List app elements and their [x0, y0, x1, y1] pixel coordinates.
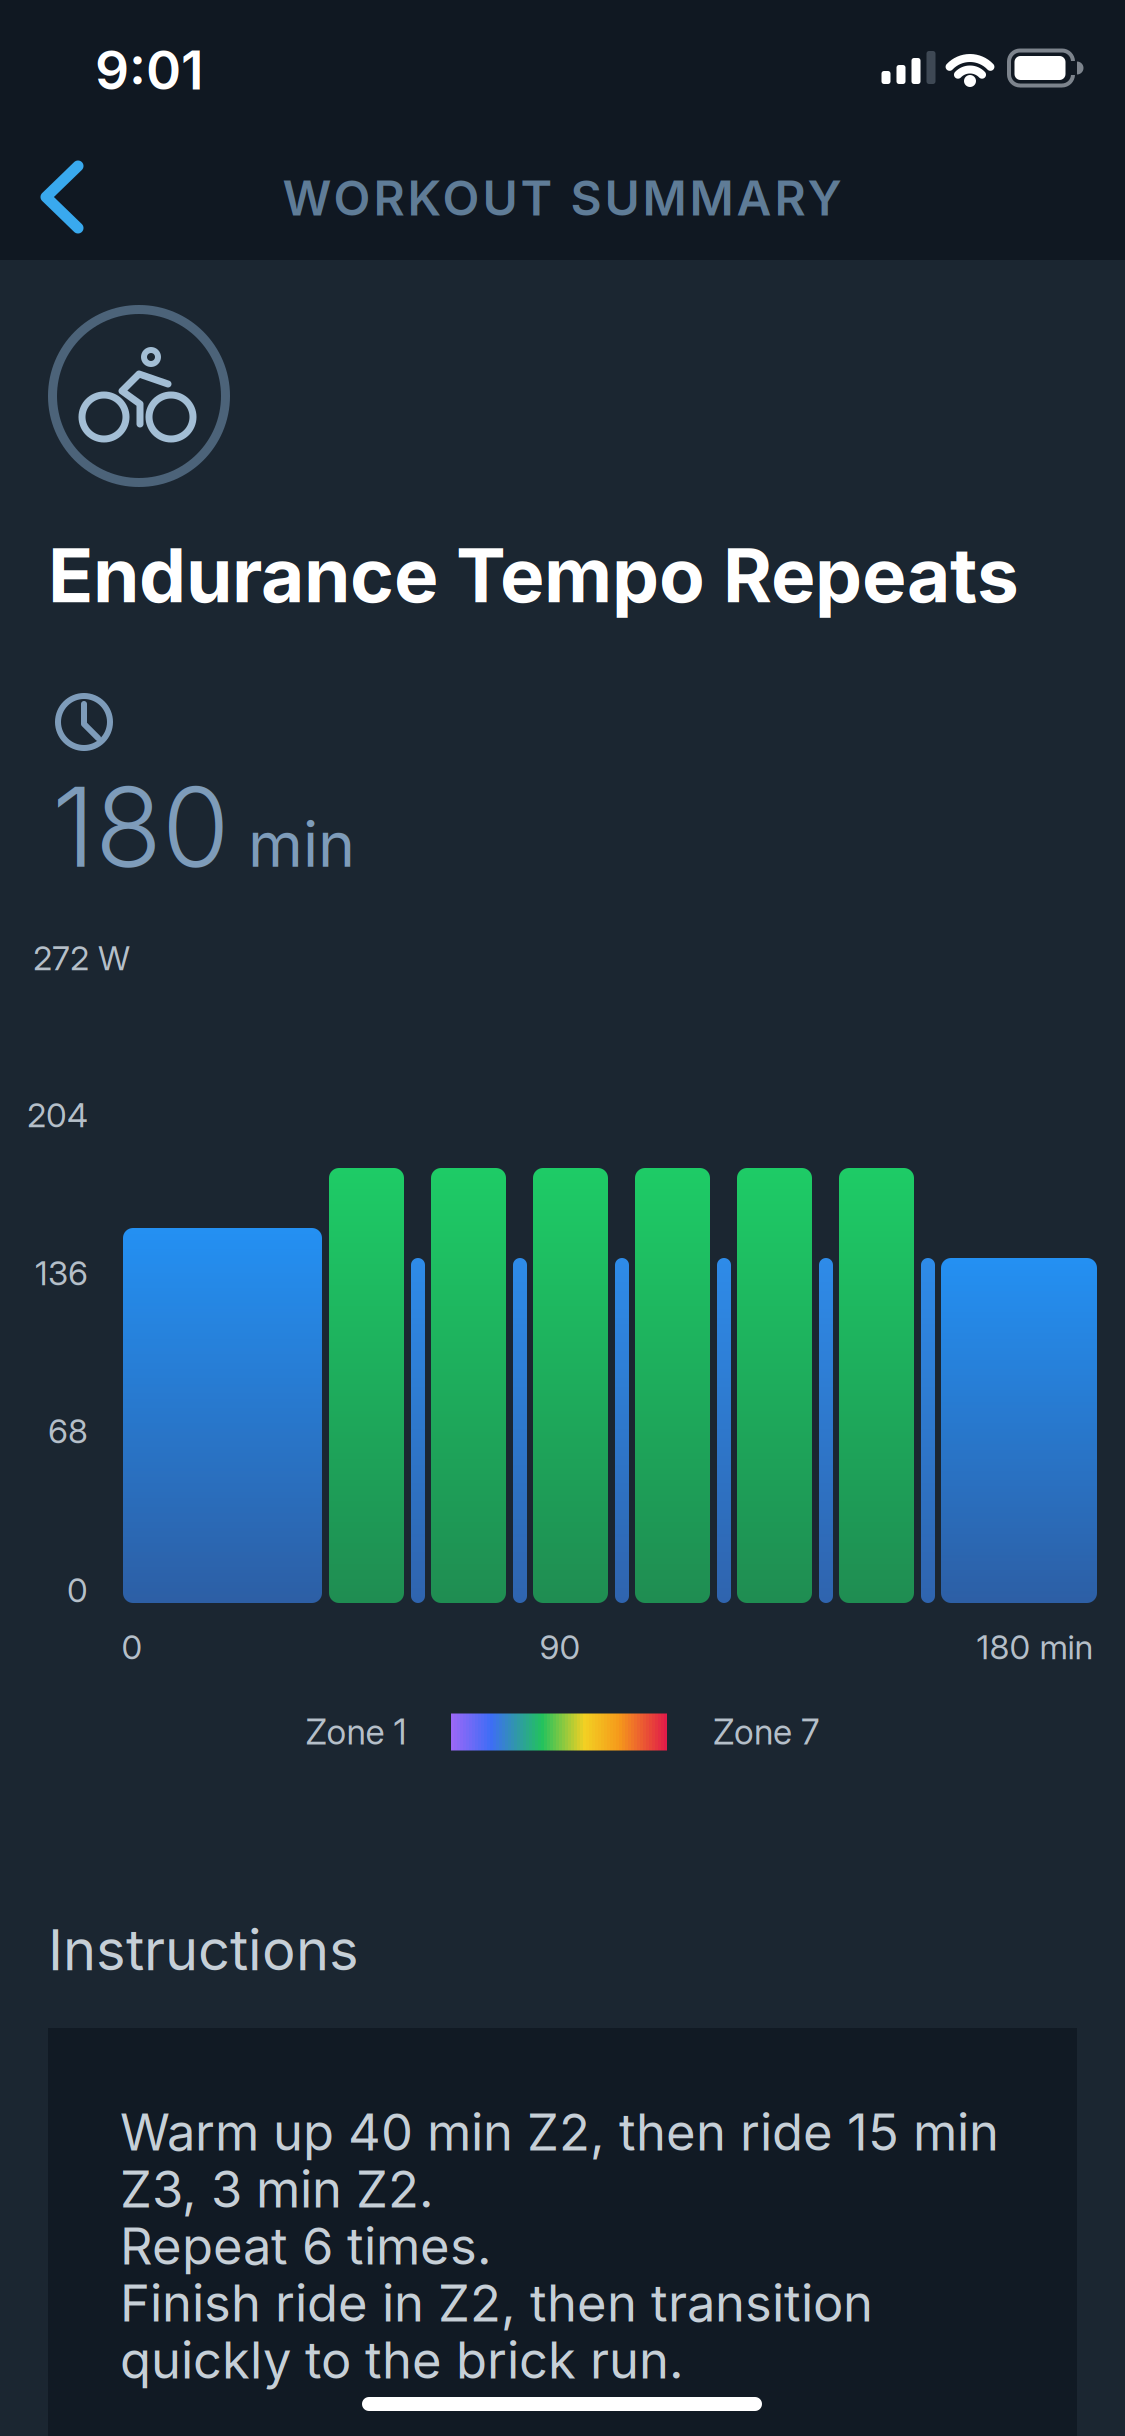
staticText: 136: [35, 1253, 88, 1293]
staticText: Zone 1: [305, 1712, 406, 1752]
staticText: Warm up 40 min Z2, then ride 15 min: [120, 2102, 999, 2162]
staticText: Finish ride in Z2, then transition: [120, 2273, 873, 2333]
button[interactable]: Back: [34, 158, 124, 236]
staticText: 90: [539, 1627, 580, 1667]
staticText: Instructions: [48, 1917, 359, 1983]
staticText: 0: [121, 1627, 142, 1667]
staticText: Repeat 6 times.: [120, 2216, 492, 2276]
staticText: Endurance Tempo Repeats: [48, 531, 1019, 619]
staticText: 180 min: [976, 1627, 1093, 1667]
staticText: Zone 7: [713, 1712, 819, 1752]
staticText: 180: [52, 762, 230, 891]
staticText: quickly to the brick run.: [120, 2330, 684, 2390]
staticText: 272 W: [33, 938, 130, 978]
staticText: Z3, 3 min Z2.: [120, 2159, 434, 2219]
staticText: WORKOUT SUMMARY: [282, 170, 841, 226]
staticText: 0: [67, 1570, 88, 1610]
staticText: min: [248, 807, 355, 881]
staticText: 9:01: [95, 38, 204, 101]
staticText: 68: [48, 1411, 88, 1451]
staticText: 204: [27, 1095, 88, 1135]
